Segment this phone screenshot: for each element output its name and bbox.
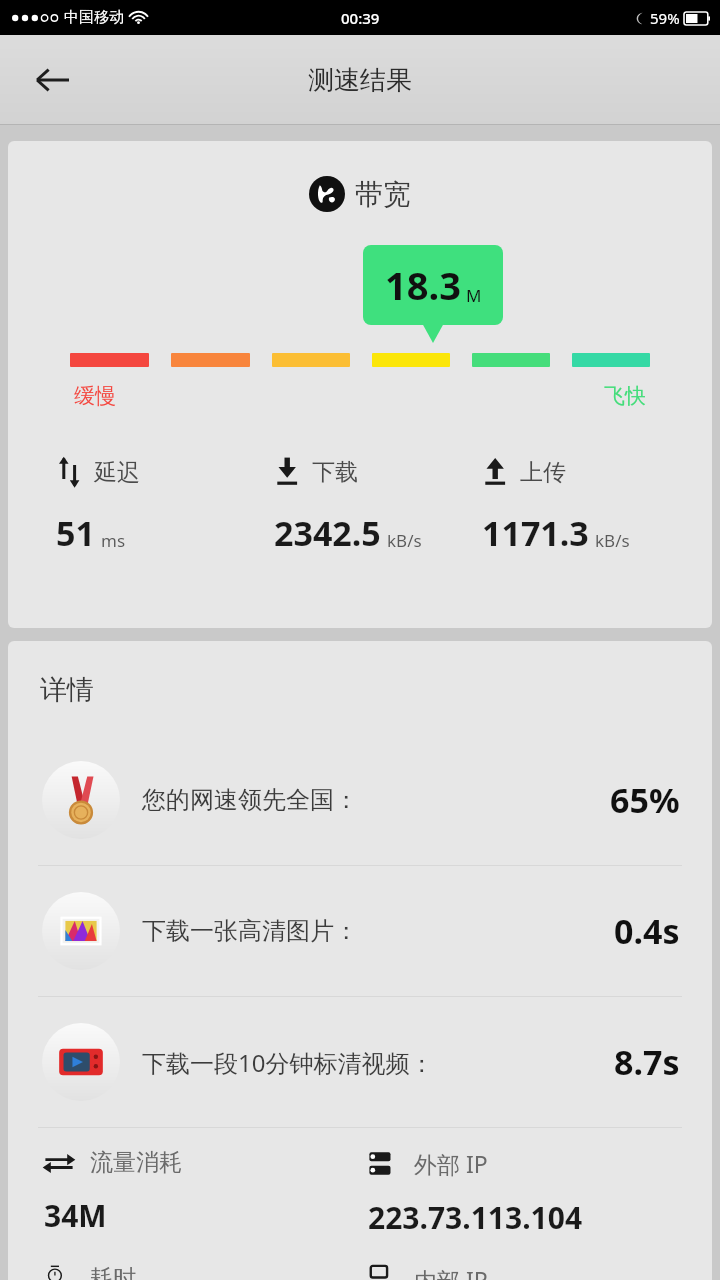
button[interactable]: 下载一段10分钟标清视频： <box>8 997 712 1127</box>
staticText: 飞快 <box>604 383 646 409</box>
button[interactable]: Back <box>24 52 80 108</box>
staticText: 0.4s <box>614 908 680 954</box>
staticText: 测速结果 <box>308 64 412 97</box>
staticText: 下载一张高清图片： <box>142 916 614 946</box>
staticText: 18.3 <box>385 259 461 311</box>
staticText: 中国移动 <box>64 8 124 27</box>
button[interactable]: 下载一张高清图片： <box>8 866 712 996</box>
button[interactable]: 您的网速领先全国： <box>8 735 712 865</box>
staticText: 34M <box>44 1195 107 1236</box>
staticText: 8.7s <box>614 1039 680 1085</box>
staticText: M <box>466 284 482 307</box>
staticText: 流量消耗 <box>90 1148 182 1177</box>
staticText: 外部 IP <box>414 1148 488 1179</box>
staticText: 您的网速领先全国： <box>142 785 610 815</box>
staticText: 223.73.113.104 <box>368 1197 583 1238</box>
staticText: 带宽 <box>355 177 411 212</box>
staticText: kB/s <box>595 529 630 552</box>
staticText: 详情 <box>40 673 94 707</box>
staticText: 65% <box>610 777 680 823</box>
staticText: 59% <box>650 8 680 28</box>
staticText: 下载 <box>312 458 358 487</box>
staticText: 延迟 <box>94 458 140 487</box>
staticText: 缓慢 <box>74 383 116 409</box>
staticText: kB/s <box>387 529 422 552</box>
staticText: 1171.3 <box>482 510 589 556</box>
staticText: 下载一段10分钟标清视频： <box>142 1046 614 1079</box>
staticText: ms <box>101 529 126 552</box>
staticText: 51 <box>56 510 95 556</box>
staticText: 00:39 <box>341 8 380 28</box>
staticText: 上传 <box>520 458 566 487</box>
staticText: 耗时 <box>90 1264 136 1280</box>
staticText: 2342.5 <box>274 510 381 556</box>
staticText: 内部 IP <box>414 1264 488 1280</box>
